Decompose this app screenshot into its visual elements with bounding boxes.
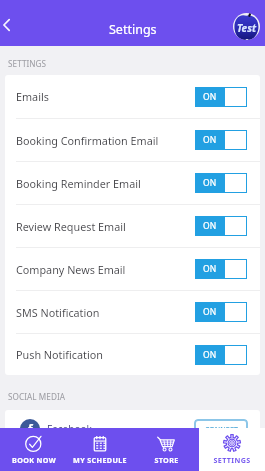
staticText: SMS Notification bbox=[16, 305, 100, 320]
button[interactable]: Booking Confirmation Email bbox=[5, 118, 260, 161]
staticText: BOOK NOW bbox=[12, 455, 56, 465]
staticText: ON bbox=[203, 306, 217, 318]
button[interactable]: f bbox=[20, 410, 248, 428]
button[interactable]: Toggle on bbox=[195, 259, 247, 279]
button[interactable]: Toggle on bbox=[195, 302, 247, 322]
button[interactable]: Review Request Email bbox=[5, 204, 260, 247]
staticText: Booking Reminder Email bbox=[16, 176, 141, 191]
staticText: Company News Email bbox=[16, 262, 126, 277]
button[interactable]: SETTINGS bbox=[199, 428, 265, 471]
staticText: SETTINGS bbox=[8, 58, 47, 69]
button[interactable]: Toggle on bbox=[195, 87, 247, 107]
staticText: Emails bbox=[16, 89, 49, 104]
button[interactable]: Booking Reminder Email bbox=[5, 161, 260, 204]
button[interactable]: SMS Notification bbox=[5, 290, 260, 333]
button[interactable]: MY SCHEDULE bbox=[67, 428, 133, 471]
staticText: ON bbox=[203, 349, 217, 361]
staticText: Settings bbox=[109, 21, 157, 38]
staticText: MY SCHEDULE bbox=[73, 455, 127, 465]
button[interactable]: Toggle on bbox=[195, 345, 247, 365]
button[interactable]: Toggle on bbox=[195, 130, 247, 150]
button[interactable]: Back bbox=[0, 19, 22, 31]
staticText: ON bbox=[203, 177, 217, 189]
button[interactable]: Profile bbox=[233, 13, 260, 40]
staticText: f bbox=[28, 421, 33, 428]
staticText: SETTINGS bbox=[213, 455, 251, 465]
staticText: Push Notification bbox=[16, 347, 103, 362]
staticText: SOCIAL MEDIA bbox=[8, 391, 66, 402]
staticText: ON bbox=[203, 134, 217, 146]
button[interactable]: Push Notification bbox=[5, 333, 260, 375]
button[interactable]: Toggle on bbox=[195, 216, 247, 236]
button[interactable]: Emails bbox=[5, 75, 260, 118]
staticText: CONNECT bbox=[205, 425, 238, 428]
staticText: Test bbox=[237, 21, 257, 35]
staticText: ON bbox=[203, 91, 217, 103]
button[interactable]: CONNECT bbox=[194, 419, 248, 428]
staticText: Review Request Email bbox=[16, 219, 126, 234]
button[interactable]: BOOK NOW bbox=[0, 428, 67, 471]
button[interactable]: Toggle on bbox=[195, 173, 247, 193]
staticText: Booking Confirmation Email bbox=[16, 133, 159, 148]
staticText: STORE bbox=[154, 455, 179, 465]
staticText: ON bbox=[203, 263, 217, 275]
button[interactable]: Company News Email bbox=[5, 247, 260, 290]
staticText: Facebook bbox=[47, 422, 92, 428]
button[interactable]: STORE bbox=[133, 428, 199, 471]
staticText: ON bbox=[203, 220, 217, 232]
